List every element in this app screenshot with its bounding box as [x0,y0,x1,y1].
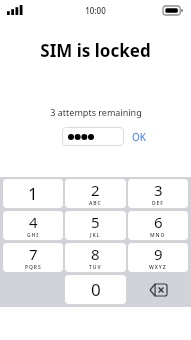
button[interactable]: 4 [3,211,63,240]
staticText: 0 [91,278,101,301]
staticText: TUV [89,264,102,271]
staticText: 6 [154,212,163,232]
staticText: 3 attempts remaining [50,106,142,118]
staticText: 4 [29,212,38,232]
staticText: 1 [28,182,38,205]
button[interactable]: 2 [65,179,126,208]
staticText: 7 [29,244,38,264]
staticText: SIM is locked [40,39,151,62]
button[interactable]: 9 [128,243,188,272]
staticText: ABC [89,200,102,207]
staticText: JKL [90,232,101,239]
button[interactable] [62,127,124,146]
button[interactable]: 5 [65,211,126,240]
staticText: MNO [150,232,166,239]
staticText: GHI [27,232,39,239]
button[interactable]: 3 [128,179,188,208]
button[interactable]: OK [130,128,148,146]
staticText: 2 [91,180,100,200]
staticText: 3 [154,180,163,200]
button[interactable]: 8 [65,243,126,272]
staticText: DEF [152,200,164,207]
staticText: PQRS [25,264,42,271]
staticText: 9 [154,244,163,264]
button[interactable]: Delete [128,275,188,304]
button[interactable]: 1 [3,179,63,208]
staticText: 10:00 [85,5,106,16]
staticText: WXYZ [149,264,167,271]
staticText: 5 [91,212,100,232]
button[interactable]: 7 [3,243,63,272]
button[interactable]: 0 [65,275,126,304]
staticText: OK [132,130,146,144]
button[interactable]: 6 [128,211,188,240]
staticText: 8 [91,244,100,264]
